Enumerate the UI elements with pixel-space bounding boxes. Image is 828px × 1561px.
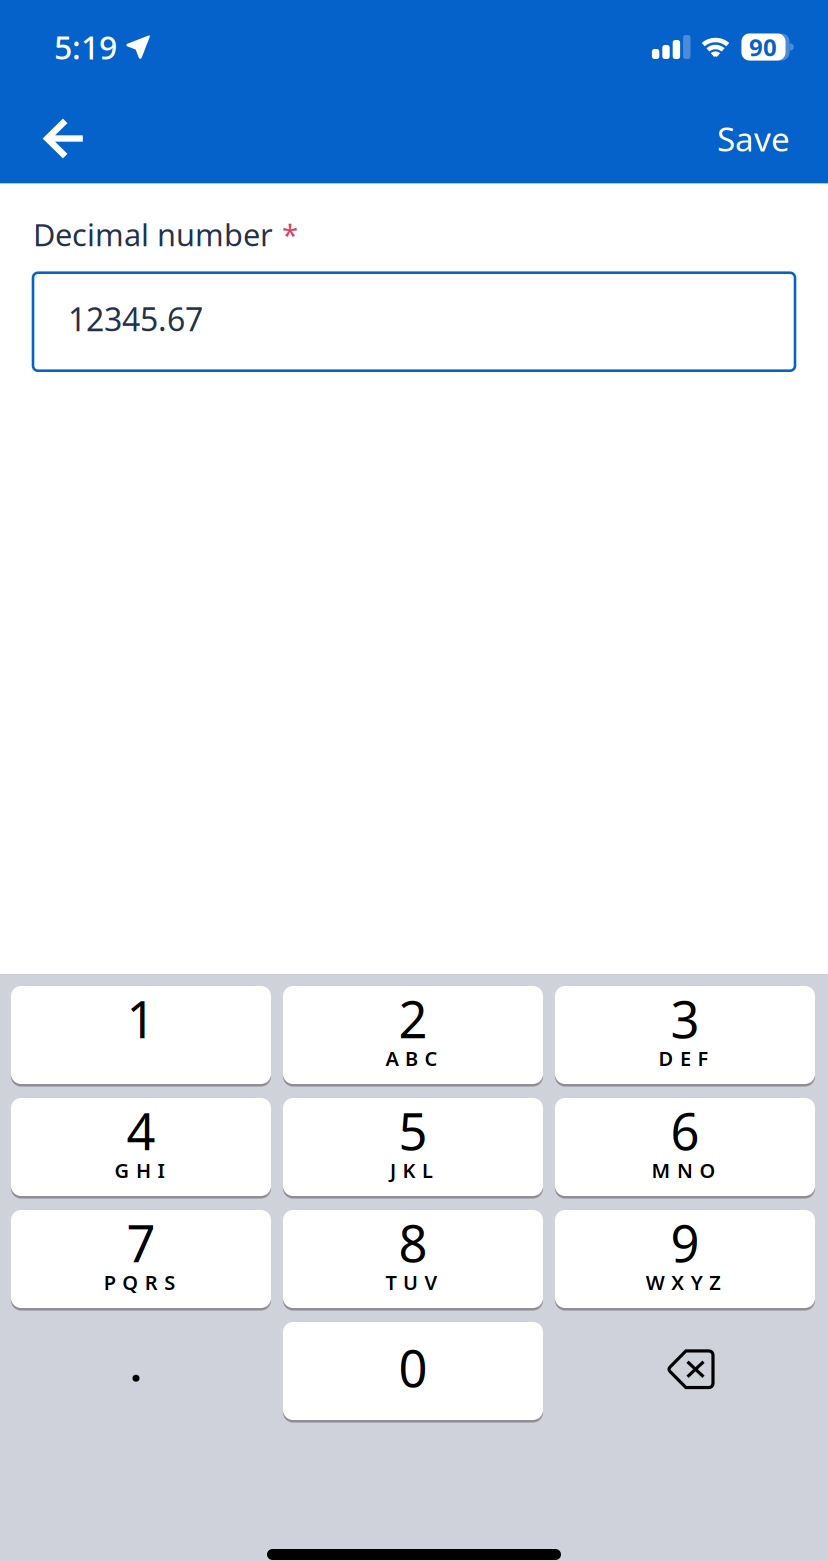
staticText: MNO — [651, 1157, 715, 1184]
staticText: Decimal number — [33, 214, 273, 255]
button[interactable]: 2 — [283, 986, 543, 1086]
staticText: 7 — [126, 1209, 155, 1276]
button[interactable]: 0 — [283, 1322, 543, 1422]
staticText: PQRS — [104, 1269, 175, 1296]
button[interactable]: 7 — [11, 1210, 271, 1310]
button[interactable]: 12345.67 — [33, 273, 795, 371]
button[interactable]: 6 — [555, 1098, 815, 1198]
button[interactable]: Back — [0, 94, 110, 182]
button[interactable]: Delete — [555, 1322, 815, 1422]
button[interactable]: 8 — [283, 1210, 543, 1310]
staticText: 4 — [126, 1097, 155, 1164]
button[interactable]: 3 — [555, 986, 815, 1086]
button[interactable]: 5 — [283, 1098, 543, 1198]
staticText: ABC — [385, 1045, 437, 1072]
staticText: 12345.67 — [68, 297, 203, 340]
button[interactable]: 4 — [11, 1098, 271, 1198]
button[interactable]: Decimal point — [11, 1322, 271, 1422]
staticText: JKL — [390, 1157, 433, 1184]
staticText: 6 — [670, 1097, 699, 1164]
staticText: GHI — [114, 1157, 164, 1184]
staticText: 5:19 — [54, 26, 117, 68]
button[interactable]: 1 — [11, 986, 271, 1086]
staticText: 5 — [398, 1097, 427, 1164]
button[interactable]: 9 — [555, 1210, 815, 1310]
staticText: DEF — [658, 1045, 708, 1072]
button[interactable]: Save — [693, 94, 828, 183]
staticText: 0 — [398, 1334, 427, 1401]
staticText: 1 — [126, 985, 155, 1052]
staticText: 2 — [398, 985, 427, 1052]
staticText: 9 — [670, 1209, 699, 1276]
staticText: * — [282, 215, 298, 254]
staticText: WXYZ — [646, 1269, 721, 1296]
staticText: 3 — [670, 985, 699, 1052]
staticText: 8 — [398, 1209, 427, 1276]
staticText: Save — [717, 116, 790, 161]
staticText: TUV — [385, 1269, 437, 1296]
staticText: 90 — [749, 31, 777, 63]
